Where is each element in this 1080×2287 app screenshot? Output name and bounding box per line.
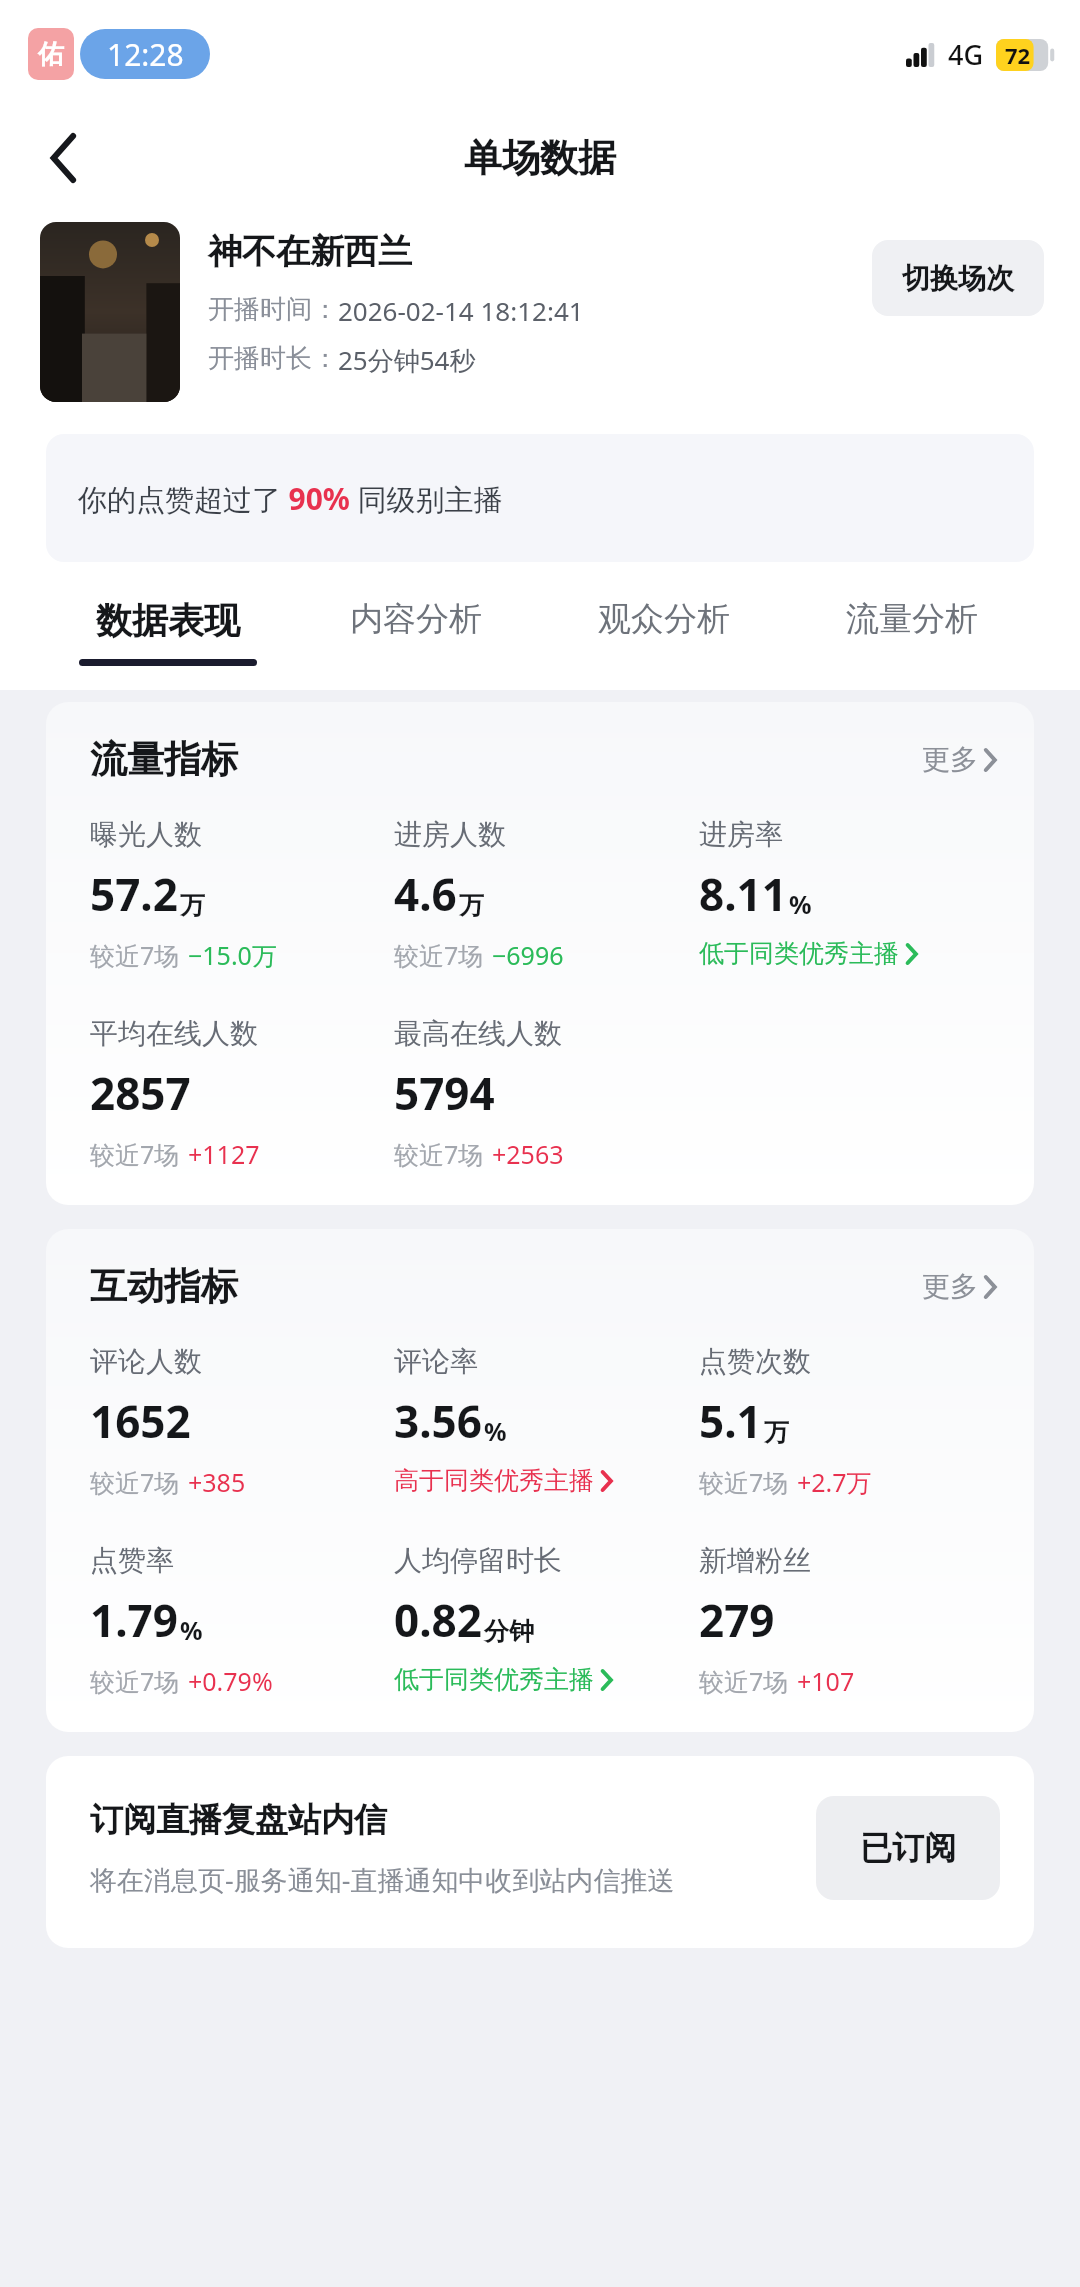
staticText: +1127 [188, 1137, 260, 1171]
button[interactable]: 低于同类优秀主播 [394, 1664, 612, 1695]
staticText: 279 [699, 1590, 775, 1650]
staticText: 更多 [922, 1269, 978, 1304]
staticText: 较近7场 [394, 938, 484, 972]
staticText: 1652 [90, 1391, 191, 1451]
staticText: 1.79 [90, 1590, 178, 1650]
staticText: 较近7场 [90, 1465, 180, 1499]
staticText: −15.0万 [188, 938, 277, 972]
staticText: 流量分析 [846, 598, 978, 640]
staticText: 点赞率 [90, 1543, 174, 1578]
staticText: 评论人数 [90, 1344, 202, 1379]
staticText: 新增粉丝 [699, 1543, 811, 1578]
staticText: 进房率 [699, 817, 783, 852]
staticText: +0.79% [188, 1664, 273, 1698]
staticText: 万 [180, 890, 205, 921]
staticText: +107 [797, 1664, 855, 1698]
staticText: 将在消息页-服务通知-直播通知中收到站内信推送 [90, 1861, 675, 1898]
staticText: −6996 [492, 938, 564, 972]
button[interactable]: 观众分析 [540, 584, 788, 690]
staticText: 12:28 [107, 34, 184, 75]
button[interactable]: 已订阅 [816, 1796, 1000, 1900]
staticText: 评论率 [394, 1344, 478, 1379]
button[interactable]: 低于同类优秀主播 [699, 938, 917, 969]
staticText: 4G [948, 36, 984, 73]
button[interactable]: 内容分析 [292, 584, 540, 690]
staticText: 0.82 [394, 1590, 482, 1650]
staticText: 内容分析 [350, 598, 482, 640]
staticText: 5794 [394, 1063, 495, 1123]
staticText: 观众分析 [598, 598, 730, 640]
staticText: 曝光人数 [90, 817, 202, 852]
staticText: 互动指标 [90, 1263, 238, 1310]
staticText: 低于同类优秀主播 [394, 1664, 594, 1695]
staticText: 2026-02-14 18:12:41 [338, 293, 584, 328]
staticText: 切换场次 [902, 261, 1014, 296]
staticText: 3.56 [394, 1391, 482, 1451]
staticText: 8.11 [699, 864, 787, 924]
staticText: 较近7场 [90, 1137, 180, 1171]
staticText: 神不在新西兰 [208, 230, 412, 273]
staticText: +2.7万 [797, 1465, 872, 1499]
button[interactable]: 高于同类优秀主播 [394, 1465, 612, 1496]
staticText: 较近7场 [699, 1465, 789, 1499]
staticText: 点赞次数 [699, 1344, 811, 1379]
staticText: 较近7场 [90, 938, 180, 972]
staticText: % [484, 1414, 507, 1448]
staticText: 4.6 [394, 864, 457, 924]
staticText: 已订阅 [860, 1828, 956, 1868]
staticText: 5.1 [699, 1391, 762, 1451]
staticText: 佑 [38, 38, 64, 71]
staticText: +385 [188, 1465, 246, 1499]
staticText: 72 [1005, 40, 1031, 70]
button[interactable]: 更多 [914, 1263, 1004, 1310]
staticText: 流量指标 [90, 736, 238, 783]
button[interactable]: 数据表现 [44, 584, 292, 690]
button[interactable]: Back [36, 130, 92, 186]
staticText: 你的点赞超过了 90% 同级别主播 [78, 478, 503, 519]
staticText: 2857 [90, 1063, 191, 1123]
staticText: 进房人数 [394, 817, 506, 852]
staticText: % [789, 887, 812, 921]
button[interactable]: 流量分析 [788, 584, 1036, 690]
staticText: 较近7场 [699, 1664, 789, 1698]
staticText: 较近7场 [394, 1137, 484, 1171]
staticText: 更多 [922, 742, 978, 777]
staticText: 高于同类优秀主播 [394, 1465, 594, 1496]
staticText: 订阅直播复盘站内信 [90, 1799, 387, 1841]
staticText: 万 [459, 890, 484, 921]
staticText: 57.2 [90, 864, 178, 924]
staticText: % [180, 1613, 203, 1647]
staticText: 25分钟54秒 [338, 342, 476, 378]
staticText: 平均在线人数 [90, 1016, 258, 1051]
staticText: +2563 [492, 1137, 564, 1171]
staticText: 低于同类优秀主播 [699, 938, 899, 969]
button[interactable]: 更多 [914, 736, 1004, 783]
staticText: 分钟 [484, 1616, 534, 1647]
staticText: 人均停留时长 [394, 1543, 562, 1578]
staticText: 数据表现 [96, 598, 240, 643]
staticText: 最高在线人数 [394, 1016, 562, 1051]
staticText: 万 [764, 1417, 789, 1448]
staticText: 单场数据 [464, 134, 616, 182]
button[interactable]: 切换场次 [872, 240, 1044, 316]
staticText: 开播时长： [208, 342, 338, 375]
staticText: 开播时间： [208, 293, 338, 326]
staticText: 较近7场 [90, 1664, 180, 1698]
